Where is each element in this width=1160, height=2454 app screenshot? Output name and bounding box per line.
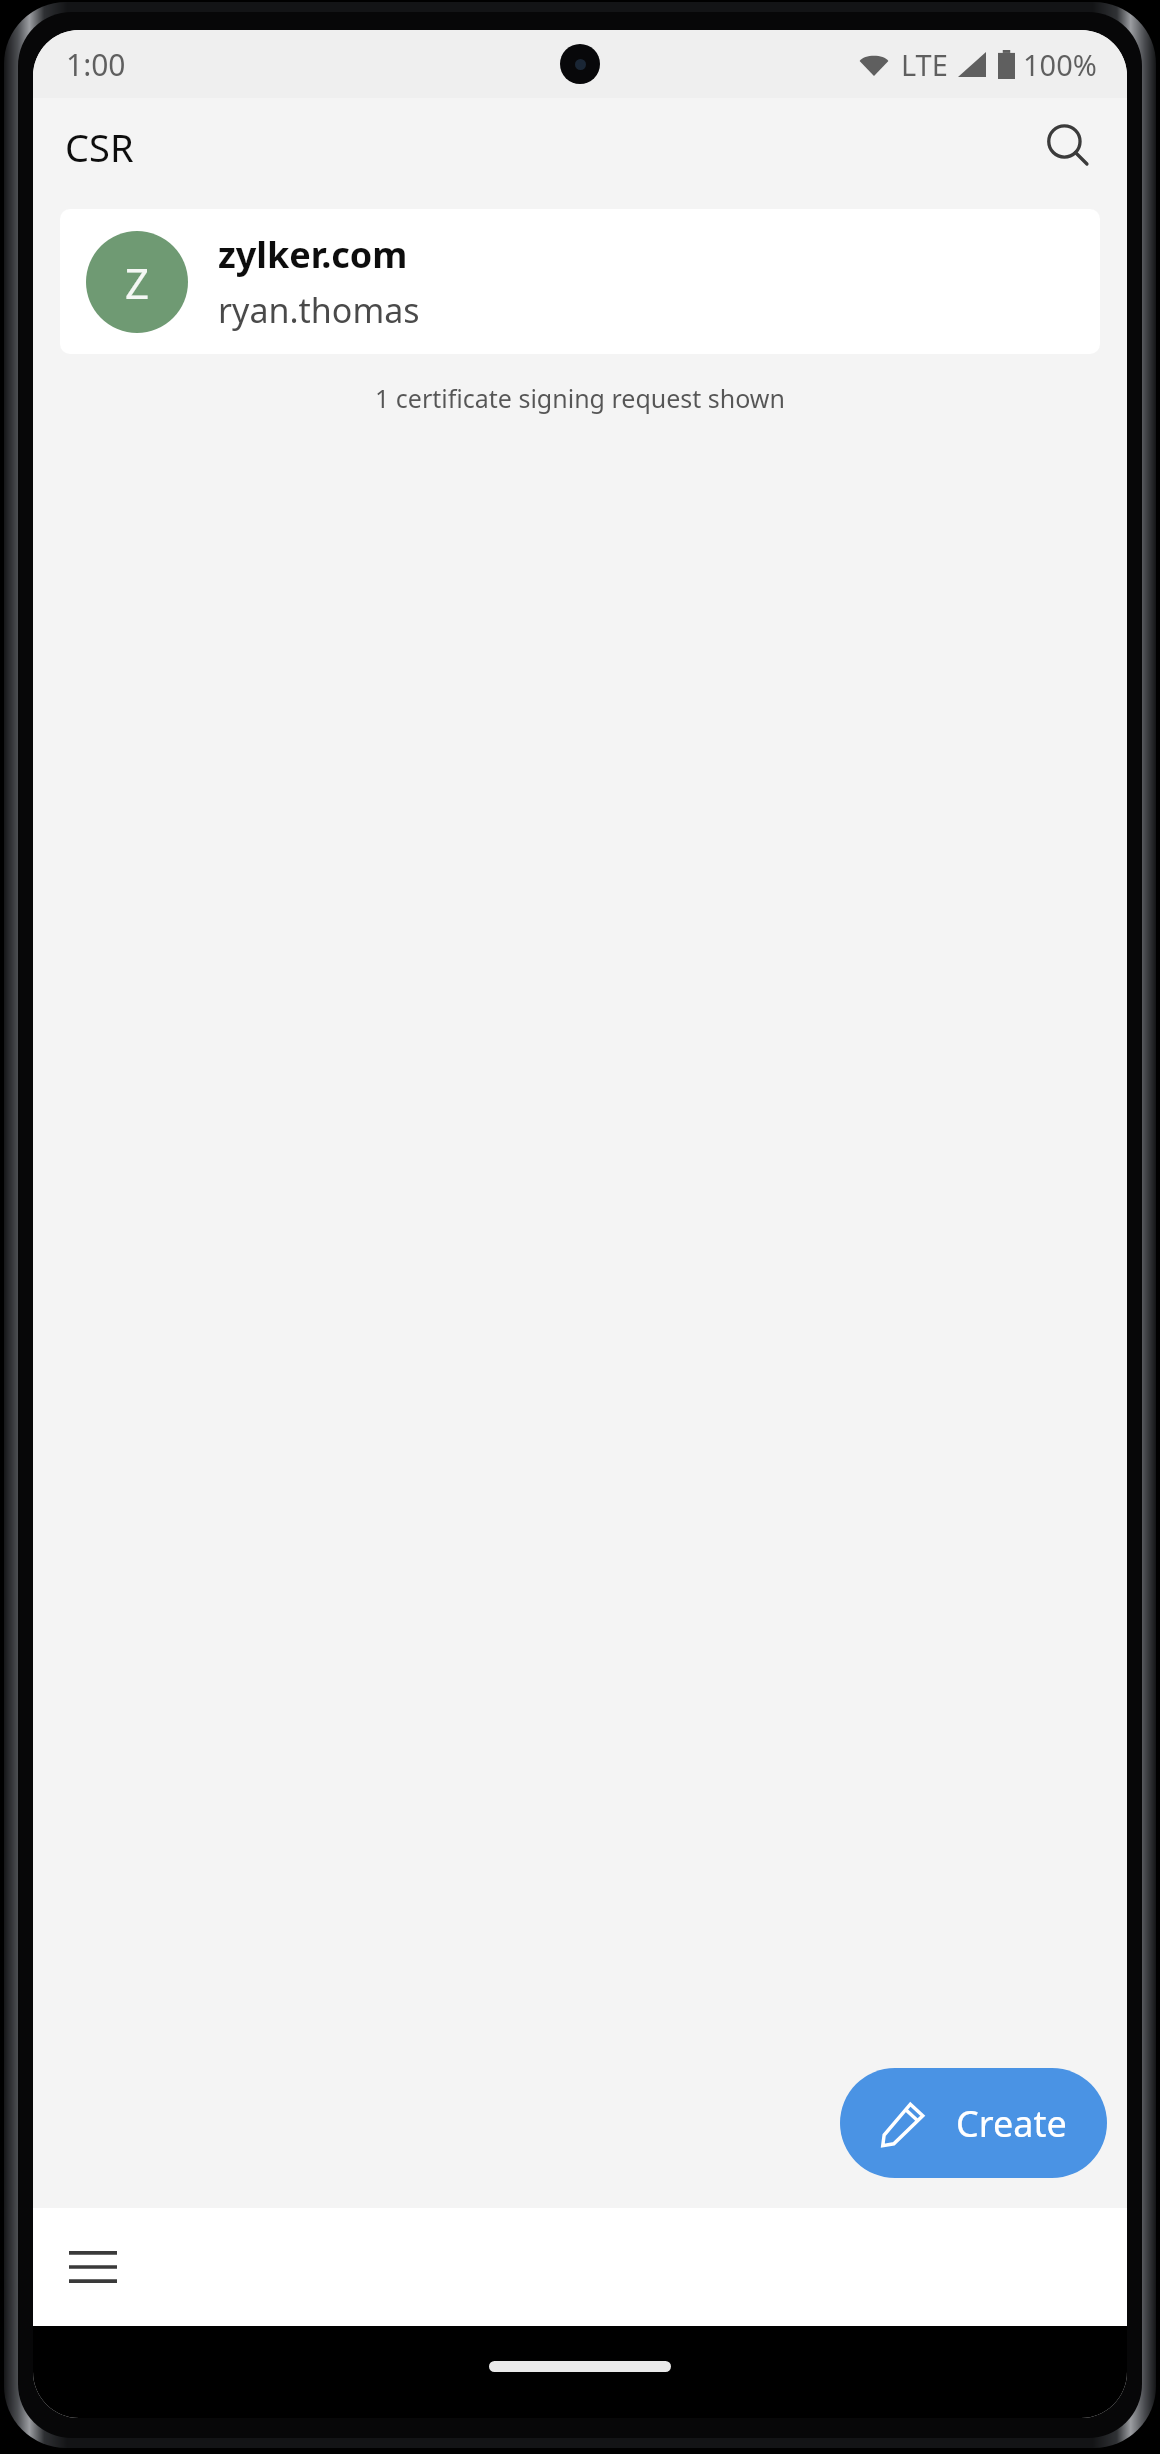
- button[interactable]: Search: [1031, 109, 1107, 185]
- button[interactable]: Z: [60, 209, 1100, 354]
- staticText: 100%: [1023, 45, 1097, 84]
- staticText: Z: [125, 254, 150, 311]
- staticText: 1:00: [66, 44, 126, 85]
- staticText: zylker.com: [218, 230, 408, 279]
- staticText: CSR: [65, 121, 134, 173]
- staticText: Create: [956, 2099, 1067, 2148]
- button[interactable]: Create: [840, 2068, 1107, 2178]
- staticText: LTE: [901, 45, 948, 84]
- staticText: 1 certificate signing request shown: [33, 381, 1127, 415]
- button[interactable]: Menu: [55, 2229, 131, 2305]
- staticText: ryan.thomas: [218, 287, 420, 333]
